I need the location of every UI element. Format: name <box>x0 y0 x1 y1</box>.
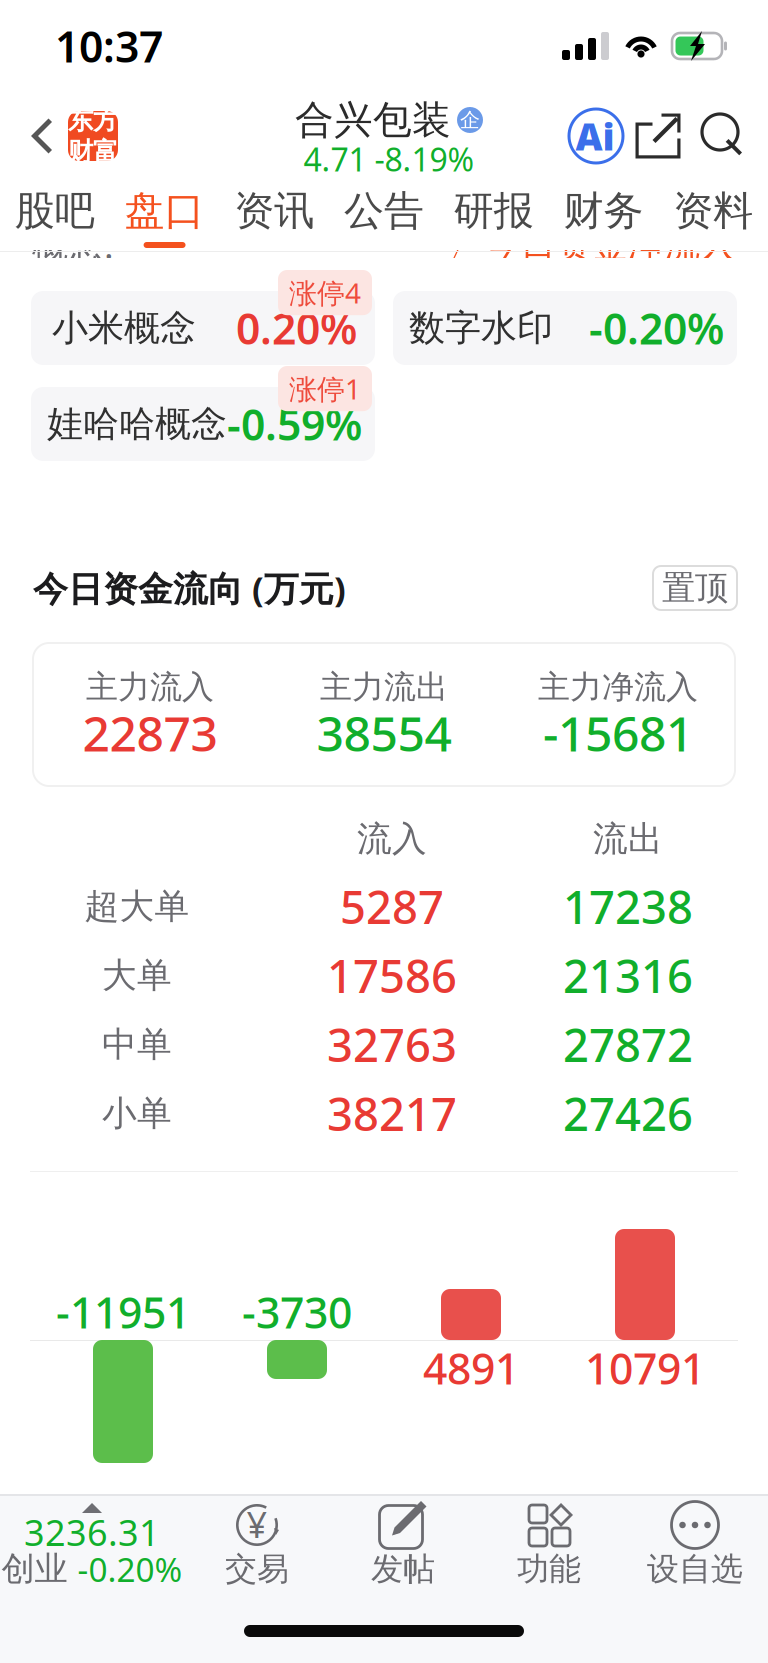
button[interactable]: 资料 <box>658 180 768 250</box>
staticText: 研报 <box>454 186 534 235</box>
staticText: 38554 <box>316 701 451 765</box>
staticText: 主力净流入 <box>538 667 698 707</box>
staticText: -11951 <box>56 1284 190 1340</box>
button[interactable]: 股吧 <box>0 180 110 250</box>
staticText: ¥ <box>246 1500 267 1548</box>
staticText: 21316 <box>563 945 693 1006</box>
staticText: 0.20% <box>236 300 357 356</box>
button[interactable]: 研报 <box>439 180 549 250</box>
button[interactable]: 数字水印 <box>393 291 737 365</box>
staticText: -3730 <box>242 1284 352 1340</box>
staticText: 超大单 <box>84 885 189 928</box>
staticText: 财务 <box>563 186 643 235</box>
staticText: 发帖 <box>371 1549 435 1589</box>
staticText: 交易 <box>225 1549 289 1589</box>
button[interactable]: 合兴包装 <box>242 92 472 180</box>
staticText: 17586 <box>327 945 457 1006</box>
staticText: 22873 <box>82 701 217 765</box>
staticText: 4891 <box>423 1340 519 1396</box>
staticText: 创业 <box>1 1548 67 1589</box>
staticText: 涨停1 <box>289 370 361 407</box>
button[interactable]: 功能 <box>476 1496 622 1598</box>
staticText: 4.71 -8.19% <box>303 138 474 180</box>
button[interactable]: 东方 <box>0 92 149 180</box>
staticText: 涨停4 <box>289 274 361 311</box>
staticText: -0.59% <box>227 396 362 452</box>
staticText: 一 〉今日资金净流入 <box>401 223 736 267</box>
staticText: 32763 <box>327 1014 457 1075</box>
staticText: Ai <box>575 111 614 161</box>
button[interactable]: 发帖 <box>330 1496 476 1598</box>
staticText: 27426 <box>563 1083 693 1144</box>
staticText: 3236.31 <box>24 1508 160 1556</box>
staticText: 流入 <box>357 818 427 860</box>
staticText: 中单 <box>102 1023 172 1066</box>
staticText: 财富 <box>68 136 118 167</box>
staticText: 合兴包装 <box>295 96 451 144</box>
button[interactable]: 设自选 <box>622 1496 768 1598</box>
button[interactable]: 3236.31 <box>0 1496 184 1598</box>
staticText: 置顶 <box>662 567 728 608</box>
staticText: 资讯 <box>234 186 314 235</box>
staticText: 10:37 <box>55 18 163 74</box>
button[interactable]: 置顶 <box>653 566 737 610</box>
staticText: 概念: <box>32 221 114 269</box>
staticText: 大单 <box>102 954 172 997</box>
staticText: 数字水印 <box>409 306 553 350</box>
button[interactable]: Search <box>689 105 757 167</box>
button[interactable]: 财务 <box>549 180 658 250</box>
staticText: 27872 <box>563 1014 693 1075</box>
button[interactable]: AI assistant <box>565 105 627 167</box>
staticText: -0.20% <box>589 300 724 356</box>
staticText: 企 <box>460 108 480 132</box>
button[interactable]: 公告 <box>329 180 439 250</box>
staticText: -0.20% <box>77 1547 182 1591</box>
staticText: 主力流出 <box>320 667 448 707</box>
staticText: 娃哈哈概念 <box>47 402 227 446</box>
button[interactable]: 娃哈哈概念 <box>31 387 375 461</box>
button[interactable]: 盘口 <box>110 180 219 250</box>
button[interactable]: 资讯 <box>219 180 329 250</box>
staticText: 资料 <box>673 186 753 235</box>
staticText: 10791 <box>585 1340 705 1396</box>
staticText: 5287 <box>340 876 444 937</box>
staticText: 小米概念 <box>52 306 196 350</box>
staticText: 今日资金流向 (万元) <box>33 565 346 611</box>
staticText: 主力流入 <box>86 667 214 707</box>
button[interactable]: Share <box>627 105 689 167</box>
staticText: 功能 <box>517 1549 581 1589</box>
staticText: 盘口 <box>125 186 205 235</box>
staticText: 设自选 <box>647 1549 743 1589</box>
button[interactable]: 小米概念 <box>31 291 375 365</box>
staticText: 流出 <box>593 818 663 860</box>
staticText: 17238 <box>563 876 693 937</box>
staticText: -15681 <box>543 701 693 765</box>
staticText: 38217 <box>327 1083 457 1144</box>
staticText: 公告 <box>344 186 424 235</box>
staticText: 东方 <box>68 105 118 136</box>
staticText: 小单 <box>102 1092 172 1135</box>
button[interactable]: ¥ <box>184 1496 330 1598</box>
staticText: 股吧 <box>15 186 95 235</box>
